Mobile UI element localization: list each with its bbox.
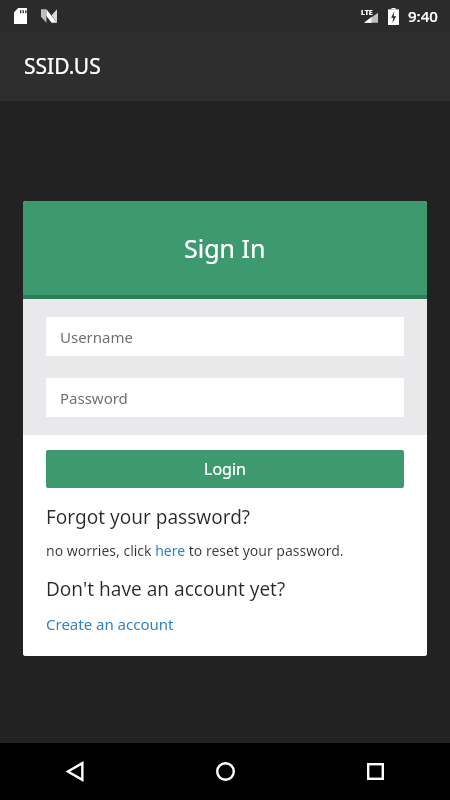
button[interactable]: Back [0,743,150,800]
button[interactable]: Username [46,317,404,356]
staticText: Login [204,458,246,480]
button[interactable]: Create an account [46,614,174,634]
staticText: Create an account [46,614,174,634]
staticText: 9:40 [408,6,438,26]
staticText: Sign In [184,231,266,265]
button[interactable]: Password [46,378,404,417]
staticText: SSID.US [24,52,101,81]
button[interactable]: Login [46,450,404,488]
button[interactable]: Recent apps [300,743,450,800]
staticText: Password [60,388,128,408]
staticText: no worries, click here to reset your pas… [46,541,344,560]
staticText: Don't have an account yet? [46,576,286,602]
staticText: Username [60,327,133,347]
staticText: Forgot your password? [46,504,251,530]
button[interactable]: no worries, click here to reset your pas… [46,541,344,560]
button[interactable]: Home [150,743,300,800]
staticText: LTE [361,8,373,18]
